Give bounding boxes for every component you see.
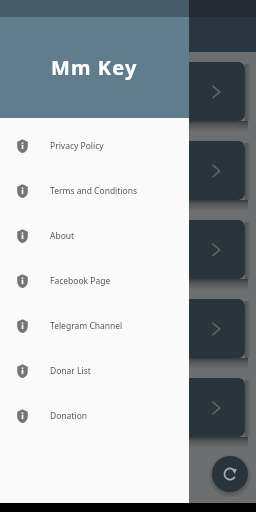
button[interactable]: Facebook Page (0, 258, 189, 303)
button[interactable]: Terms and Conditions (0, 168, 189, 213)
staticText: Privacy Policy (50, 140, 104, 152)
staticText: Donar List (50, 365, 91, 377)
button[interactable] (10, 141, 246, 200)
staticText: Telegram Channel (50, 320, 123, 332)
button[interactable]: Telegram Channel (0, 303, 189, 348)
staticText: Terms and Conditions (50, 185, 138, 197)
button[interactable] (10, 299, 246, 358)
button[interactable]: Donation (0, 393, 189, 438)
button[interactable] (10, 220, 246, 279)
button[interactable] (10, 62, 246, 121)
staticText: Donation (50, 410, 88, 422)
staticText: Mm Key (51, 54, 138, 81)
button[interactable]: About (0, 213, 189, 258)
button[interactable]: Privacy Policy (0, 123, 189, 168)
button[interactable]: Donar List (0, 348, 189, 393)
staticText: Facebook Page (50, 275, 111, 287)
staticText: About (50, 230, 75, 242)
button[interactable]: Refresh (212, 456, 248, 492)
button[interactable] (10, 378, 246, 437)
